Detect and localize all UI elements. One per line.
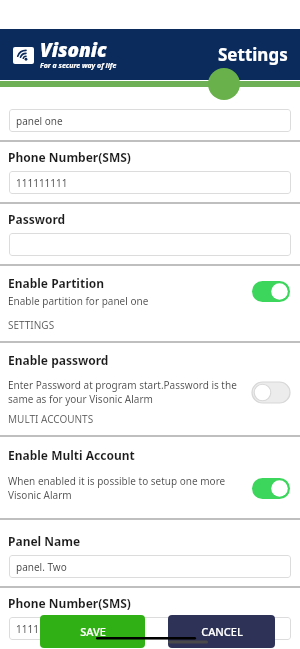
button[interactable]: Toggle on <box>252 478 290 499</box>
button[interactable]: CANCEL <box>168 615 275 648</box>
button[interactable]: 1111111 <box>9 617 291 640</box>
staticText: Password <box>8 211 66 227</box>
staticText: MULTI ACCOUNTS <box>8 412 94 426</box>
staticText: 1111111 <box>16 622 57 636</box>
button[interactable]: SAVE <box>40 615 145 648</box>
staticText: Enable password <box>8 352 109 368</box>
staticText: SAVE <box>80 624 106 639</box>
staticText: Enable partition for panel one <box>8 294 149 308</box>
staticText: For a secure way of life <box>40 61 117 71</box>
staticText: panel. Two <box>16 560 67 574</box>
button[interactable]: Toggle on <box>252 281 290 302</box>
staticText: SETTINGS <box>8 318 55 332</box>
staticText: When enabled it is possible to setup one… <box>8 474 244 502</box>
staticText: 111111111 <box>16 176 68 190</box>
button[interactable]: panel. Two <box>9 555 291 578</box>
staticText: Enable Partition <box>8 275 105 291</box>
button[interactable]: Toggle off <box>252 382 290 403</box>
staticText: Phone Number(SMS) <box>8 149 131 165</box>
button[interactable]: Enable Partition <box>0 275 300 308</box>
staticText: Enter Password at program start.Password… <box>8 378 244 406</box>
staticText: panel one <box>16 114 63 128</box>
button[interactable]: panel one <box>9 109 291 132</box>
button[interactable] <box>9 233 291 256</box>
staticText: Phone Number(SMS) <box>8 595 131 611</box>
staticText: Visonic <box>40 37 107 63</box>
button[interactable]: When enabled it is possible to setup one… <box>0 474 300 502</box>
staticText: Enable Multi Account <box>8 447 135 463</box>
staticText: CANCEL <box>201 624 243 639</box>
button[interactable]: Enter Password at program start.Password… <box>0 378 300 406</box>
button[interactable]: 111111111 <box>9 171 291 194</box>
staticText: Panel Name <box>8 533 81 549</box>
button[interactable]: Settings <box>218 43 288 66</box>
